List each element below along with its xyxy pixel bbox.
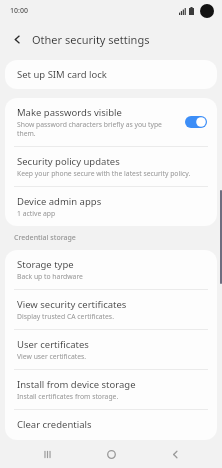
staticText: View security certificates	[17, 298, 127, 311]
staticText: Make passwords visible	[17, 106, 122, 119]
button[interactable]: User certificates	[5, 330, 217, 369]
staticText: 1 active app	[17, 209, 56, 218]
staticText: Other security settings	[32, 32, 150, 47]
button[interactable]: Back	[158, 440, 192, 468]
button[interactable]: Home	[94, 440, 128, 468]
button[interactable]: Security policy updates	[5, 147, 217, 186]
staticText: Display trusted CA certificates.	[17, 312, 114, 321]
staticText: Back up to hardware	[17, 272, 83, 281]
button[interactable]: Make passwords visible	[5, 98, 217, 146]
staticText: Set up SIM card lock	[17, 68, 107, 81]
staticText: User certificates	[17, 338, 89, 351]
staticText: Show password characters briefly as you …	[17, 120, 177, 138]
button[interactable]: Storage type	[5, 250, 217, 289]
staticText: Keep your phone secure with the latest s…	[17, 169, 191, 178]
button[interactable]: Clear credentials	[5, 410, 217, 440]
button[interactable]: Set up SIM card lock	[5, 60, 217, 89]
staticText: Install certificates from storage.	[17, 392, 119, 401]
button[interactable]: Device admin apps	[5, 187, 217, 226]
staticText: Security policy updates	[17, 155, 120, 168]
staticText: Install from device storage	[17, 378, 136, 391]
staticText: Clear credentials	[17, 418, 92, 431]
staticText: Credential storage	[14, 233, 76, 243]
staticText: Storage type	[17, 258, 74, 271]
button[interactable]: Install from device storage	[5, 370, 217, 409]
staticText: 10:00	[10, 6, 28, 16]
button[interactable]: Navigate up	[6, 28, 28, 50]
button[interactable]: View security certificates	[5, 290, 217, 329]
button[interactable]: Make passwords visible	[185, 116, 207, 128]
staticText: View user certificates.	[17, 352, 87, 361]
button[interactable]: Recent apps	[30, 440, 64, 468]
staticText: Device admin apps	[17, 195, 102, 208]
